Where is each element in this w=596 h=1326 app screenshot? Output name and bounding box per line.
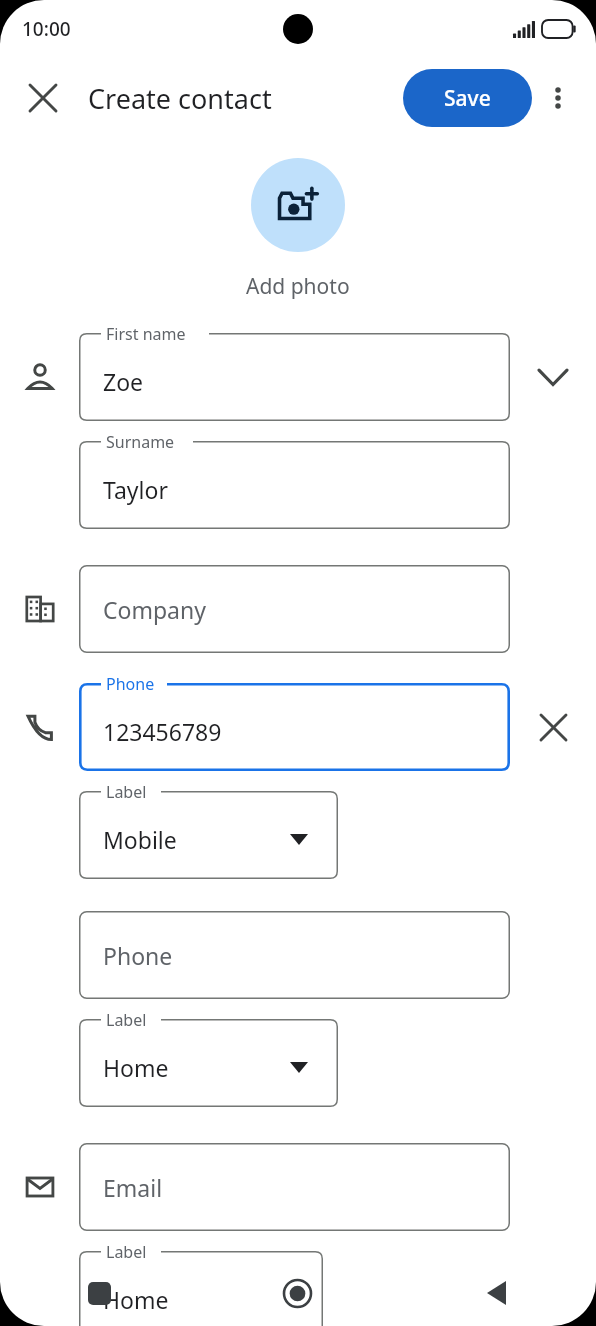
- staticText: First name: [106, 323, 186, 345]
- button[interactable]: More options: [532, 72, 584, 124]
- staticText: Home: [103, 1052, 169, 1083]
- button[interactable]: Save: [403, 69, 532, 127]
- staticText: Email: [103, 1172, 163, 1203]
- staticText: Save: [444, 84, 491, 113]
- button[interactable]: Recent apps: [0, 1260, 198, 1326]
- button[interactable]: First name: [79, 333, 510, 421]
- staticText: Taylor: [103, 474, 168, 505]
- button[interactable]: Clear phone: [510, 683, 596, 771]
- button[interactable]: Surname: [79, 441, 510, 529]
- button[interactable]: Label: [79, 1019, 338, 1107]
- staticText: Phone: [106, 673, 155, 695]
- button[interactable]: Add photo: [251, 158, 345, 252]
- staticText: Create contact: [88, 80, 272, 117]
- staticText: 123456789: [103, 716, 222, 747]
- button[interactable]: Label: [79, 791, 338, 879]
- staticText: Home: [103, 1284, 169, 1315]
- button[interactable]: Phone: [79, 683, 510, 771]
- staticText: Company: [103, 594, 206, 625]
- staticText: 10:00: [22, 16, 71, 42]
- staticText: Mobile: [103, 824, 177, 855]
- staticText: Label: [106, 1009, 147, 1031]
- button[interactable]: Phone: [79, 911, 510, 999]
- button[interactable]: Back: [397, 1260, 596, 1326]
- staticText: Label: [106, 781, 147, 803]
- button[interactable]: Close: [14, 69, 72, 127]
- button[interactable]: Expand name fields: [510, 333, 596, 421]
- staticText: Label: [106, 1241, 147, 1263]
- staticText: Phone: [103, 940, 173, 971]
- staticText: Surname: [106, 431, 175, 453]
- button[interactable]: Label: [79, 1251, 323, 1326]
- staticText: Zoe: [103, 366, 144, 397]
- button[interactable]: Company: [79, 565, 510, 653]
- button[interactable]: Home: [198, 1260, 397, 1326]
- staticText: Add photo: [246, 272, 350, 301]
- button[interactable]: Email: [79, 1143, 510, 1231]
